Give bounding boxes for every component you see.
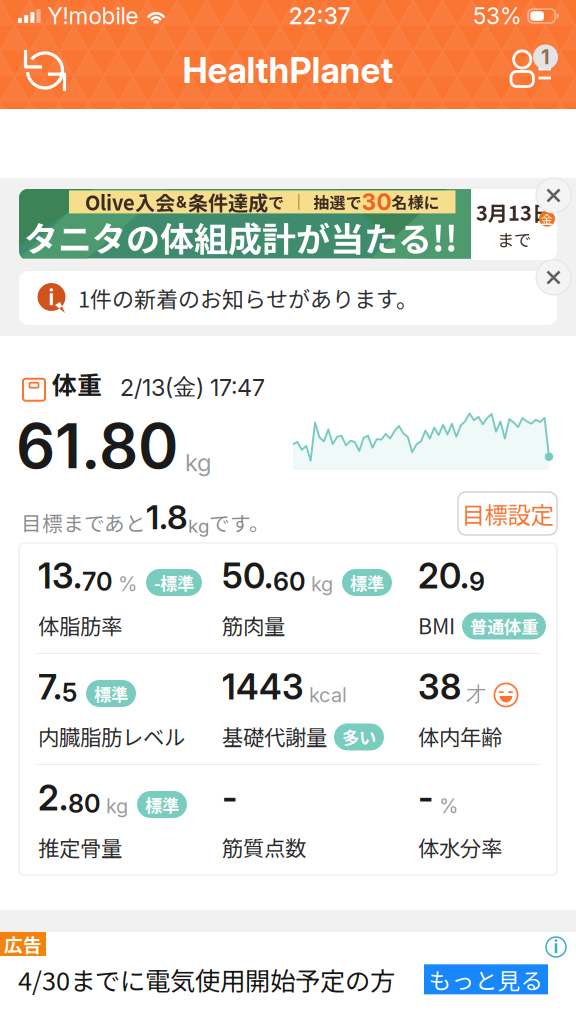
staticText: まで bbox=[497, 226, 531, 251]
staticText: 体重 bbox=[52, 366, 102, 402]
staticText: 80 bbox=[68, 788, 101, 819]
staticText: 才 bbox=[466, 682, 486, 707]
staticText: 3月13日 bbox=[476, 197, 552, 226]
staticText: 広告 bbox=[4, 930, 42, 957]
staticText: 30 bbox=[361, 188, 391, 216]
staticText: 7. bbox=[38, 666, 62, 708]
staticText: 推定骨量 bbox=[38, 832, 122, 862]
staticText: です。 bbox=[209, 507, 270, 537]
button[interactable]: Sync bbox=[0, 38, 82, 102]
staticText: 53% bbox=[473, 2, 522, 30]
staticText: 体水分率 bbox=[418, 832, 502, 862]
staticText: i bbox=[48, 285, 54, 310]
staticText: 60 bbox=[273, 566, 306, 597]
staticText: kcal bbox=[309, 683, 347, 707]
staticText: 1.8 bbox=[146, 497, 188, 537]
button[interactable]: Close banner bbox=[536, 178, 571, 213]
staticText: 標準 bbox=[94, 681, 128, 706]
button[interactable]: Profile and notifications bbox=[498, 42, 576, 98]
staticText: 内臓脂肪レベル bbox=[38, 721, 185, 751]
staticText: -標準 bbox=[154, 570, 194, 595]
staticText: HealthPlanet bbox=[182, 49, 393, 91]
staticText: 2. bbox=[38, 777, 68, 819]
staticText: 4/30までに電気使用開始予定の方 bbox=[18, 961, 395, 998]
staticText: i bbox=[553, 936, 558, 957]
staticText: 基礎代謝量 bbox=[222, 721, 327, 751]
staticText: kg bbox=[188, 515, 209, 537]
staticText: - bbox=[418, 777, 434, 819]
staticText: 名様に bbox=[391, 190, 439, 213]
staticText: 抽選で bbox=[313, 190, 361, 213]
staticText: 筋肉量 bbox=[222, 610, 285, 640]
staticText: 普通体重 bbox=[470, 613, 538, 638]
button[interactable]: Ad information bbox=[545, 932, 576, 958]
staticText: 61.80 bbox=[16, 409, 178, 483]
button[interactable]: 目標設定 bbox=[458, 492, 557, 535]
staticText: 体脂肪率 bbox=[38, 610, 122, 640]
staticText: 70 bbox=[82, 566, 113, 597]
staticText: 標準 bbox=[350, 570, 384, 595]
staticText: % bbox=[118, 572, 137, 596]
staticText: 体内年齢 bbox=[418, 721, 502, 751]
staticText: kg bbox=[311, 572, 333, 596]
staticText: で bbox=[268, 190, 284, 213]
button[interactable]: もっと見る bbox=[424, 964, 548, 994]
staticText: Y!mobile bbox=[48, 2, 139, 30]
staticText: 1件の新着のお知らせがあります。 bbox=[78, 282, 418, 314]
staticText: 標準 bbox=[145, 792, 179, 817]
staticText: タニタの体組成計が当たる!! bbox=[24, 212, 458, 262]
staticText: kg bbox=[185, 448, 211, 477]
staticText: 1443 bbox=[222, 666, 304, 708]
staticText: 20. bbox=[418, 555, 469, 597]
staticText: kg bbox=[106, 794, 128, 818]
staticText: 38 bbox=[418, 666, 461, 708]
staticText: 金 bbox=[541, 210, 553, 227]
button[interactable]: Close notice bbox=[536, 260, 571, 295]
staticText: 50. bbox=[222, 555, 273, 597]
staticText: - bbox=[222, 777, 238, 819]
staticText: 目標設定 bbox=[461, 497, 553, 530]
staticText: % bbox=[439, 794, 458, 818]
staticText: & bbox=[176, 192, 187, 212]
staticText: Olive入会 bbox=[85, 187, 175, 216]
staticText: 13. bbox=[38, 555, 82, 597]
staticText: 1 bbox=[541, 45, 550, 69]
staticText: 2/13(金) 17:47 bbox=[120, 372, 265, 402]
staticText: もっと見る bbox=[428, 963, 543, 996]
staticText: 9 bbox=[469, 566, 485, 597]
staticText: 筋質点数 bbox=[222, 832, 306, 862]
staticText: 5 bbox=[62, 677, 77, 708]
staticText: 条件達成 bbox=[188, 187, 268, 216]
staticText: 22:37 bbox=[289, 2, 351, 30]
staticText: 目標まであと bbox=[21, 507, 146, 537]
staticText: 多い bbox=[342, 724, 376, 749]
button[interactable]: i bbox=[19, 271, 557, 325]
staticText: BMI bbox=[418, 610, 455, 640]
